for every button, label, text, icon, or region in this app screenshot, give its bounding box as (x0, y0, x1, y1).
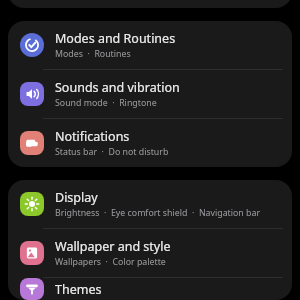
staticText: Themes (55, 281, 102, 298)
staticText: Wallpapers · Color palette (55, 256, 166, 268)
button[interactable]: Themes (8, 278, 292, 300)
button[interactable]: Modes and Routines (8, 21, 292, 69)
button[interactable]: Notifications (8, 119, 292, 167)
staticText: Wallpaper and style (55, 238, 171, 255)
staticText: Modes and Routines (55, 30, 176, 47)
button[interactable]: Wallpaper and style (8, 229, 292, 277)
staticText: Sound mode · Ringtone (55, 97, 157, 109)
staticText: Status bar · Do not disturb (55, 146, 169, 158)
staticText: Display (55, 189, 98, 206)
button[interactable] (8, 0, 292, 8)
staticText: Brightness · Eye comfort shield · Naviga… (55, 207, 261, 219)
staticText: Notifications (55, 128, 130, 145)
button[interactable]: Sounds and vibration (8, 70, 292, 118)
staticText: Sounds and vibration (55, 79, 180, 96)
staticText: Modes · Routines (55, 48, 131, 60)
button[interactable]: Display (8, 180, 292, 228)
